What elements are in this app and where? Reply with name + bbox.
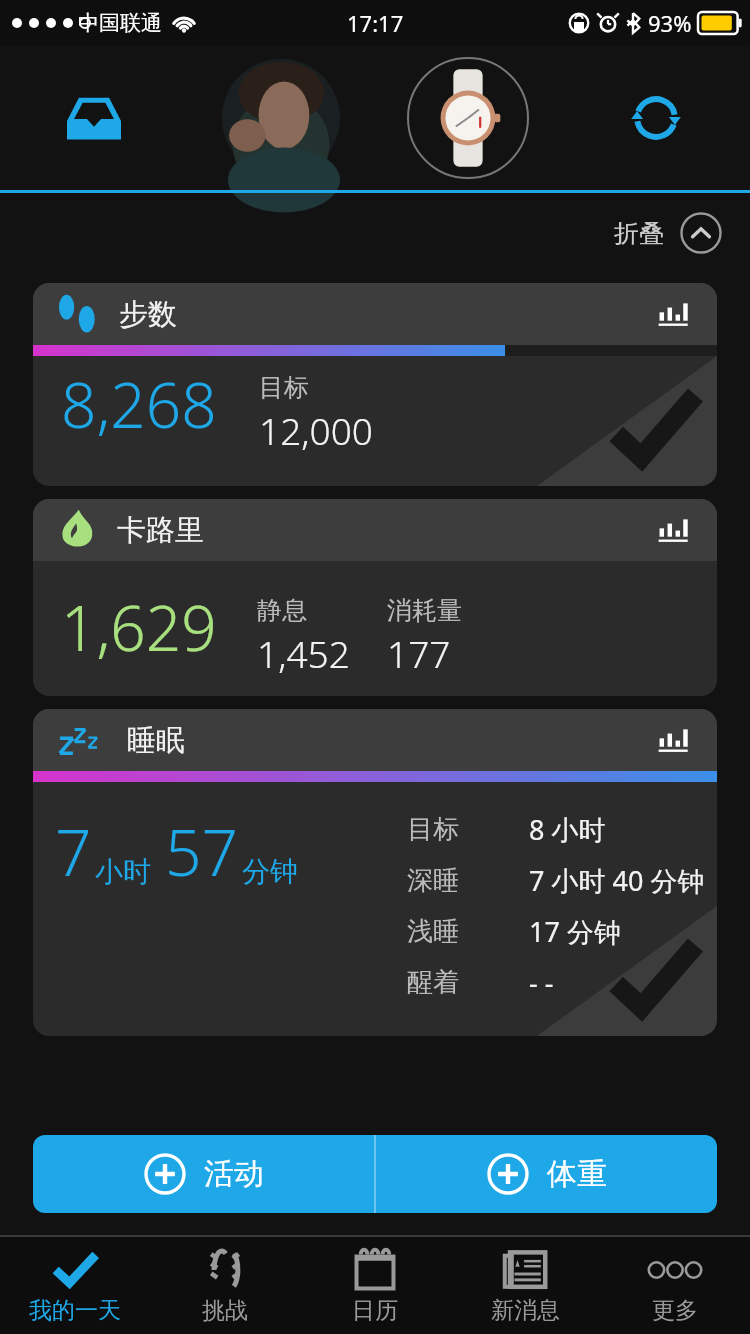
button[interactable]: 图表 bbox=[651, 718, 695, 762]
button[interactable]: 步数 bbox=[33, 283, 717, 486]
staticText: 17 分钟 bbox=[529, 913, 621, 950]
staticText: 挑战 bbox=[202, 1296, 248, 1325]
staticText: - - bbox=[529, 964, 554, 1001]
staticText: 177 bbox=[387, 628, 451, 678]
button[interactable]: 折叠 bbox=[0, 193, 722, 273]
staticText: 8 小时 bbox=[529, 811, 606, 848]
staticText: 深睡 bbox=[407, 864, 529, 897]
staticText: 体重 bbox=[547, 1155, 607, 1193]
staticText: 步数 bbox=[119, 296, 177, 333]
button[interactable]: 图表 bbox=[651, 508, 695, 552]
button[interactable]: 图表 bbox=[651, 292, 695, 336]
button[interactable]: 睡眠 bbox=[33, 709, 717, 1036]
staticText: 小时 bbox=[95, 854, 151, 889]
staticText: 睡眠 bbox=[127, 722, 185, 759]
staticText: 我的一天 bbox=[29, 1296, 121, 1325]
staticText: 更多 bbox=[652, 1296, 698, 1325]
button[interactable]: 挑战 bbox=[150, 1237, 300, 1334]
staticText: 57 bbox=[165, 808, 239, 895]
staticText: 1,452 bbox=[257, 628, 350, 678]
staticText: 卡路里 bbox=[117, 512, 204, 549]
button[interactable]: 我的一天 bbox=[0, 1237, 150, 1334]
staticText: 日历 bbox=[352, 1296, 398, 1325]
staticText: 1,629 bbox=[61, 585, 217, 669]
button[interactable]: 个人资料 bbox=[187, 45, 374, 190]
staticText: 93% bbox=[648, 8, 692, 38]
button[interactable]: 日历 bbox=[300, 1237, 450, 1334]
button[interactable]: 更多 bbox=[600, 1237, 750, 1334]
staticText: 目标 bbox=[259, 372, 309, 403]
button[interactable]: 新消息 bbox=[450, 1237, 600, 1334]
staticText: 7 bbox=[55, 808, 92, 895]
button[interactable]: 活动 bbox=[33, 1135, 374, 1213]
staticText: 浅睡 bbox=[407, 915, 529, 948]
staticText: 7 小时 40 分钟 bbox=[529, 862, 705, 899]
staticText: 中国联通 bbox=[78, 10, 162, 36]
staticText: 新消息 bbox=[491, 1296, 560, 1325]
button[interactable]: 收件箱 bbox=[0, 45, 187, 190]
button[interactable]: 同步 bbox=[562, 45, 750, 190]
staticText: 目标 bbox=[407, 813, 529, 846]
staticText: 活动 bbox=[204, 1155, 264, 1193]
staticText: 分钟 bbox=[242, 854, 298, 889]
button[interactable]: 卡路里 bbox=[33, 499, 717, 696]
staticText: 醒着 bbox=[407, 966, 529, 999]
staticText: 8,268 bbox=[61, 362, 217, 446]
button[interactable]: 手表 bbox=[374, 45, 562, 190]
staticText: 折叠 bbox=[614, 218, 664, 249]
staticText: 17:17 bbox=[347, 8, 404, 38]
staticText: 12,000 bbox=[259, 405, 373, 455]
staticText: 消耗量 bbox=[387, 595, 462, 626]
button[interactable]: 体重 bbox=[376, 1135, 717, 1213]
staticText: 静息 bbox=[257, 595, 307, 626]
